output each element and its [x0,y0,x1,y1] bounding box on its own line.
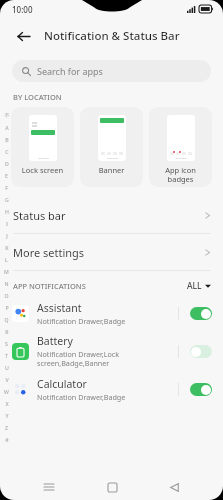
staticText: Notification Drawer,Lock screen,Badge,Ba… [37,349,120,368]
button[interactable]: On [190,383,212,396]
staticText: More settings [13,245,85,260]
button[interactable]: ALL [187,280,211,292]
staticText: L [5,256,8,268]
staticText: G [5,196,9,208]
button[interactable]: Back [12,25,34,47]
staticText: Banner [80,165,143,175]
staticText: App icon badges [149,165,212,184]
staticText: T [5,352,8,364]
staticText: Y [5,412,9,424]
staticText: I [6,220,8,232]
button[interactable]: Search for apps [12,60,211,82]
staticText: B [5,136,9,148]
button[interactable]: Lock screen [11,107,74,187]
staticText: Q [4,316,9,328]
staticText: 不 [4,112,10,124]
button[interactable]: App icon badges [149,107,212,187]
staticText: C [5,148,9,160]
staticText: X [5,400,9,412]
staticText: # [5,436,9,448]
staticText: E [5,172,8,184]
staticText: Calculator [37,377,87,391]
staticText: Notification Drawer,Badge [37,392,126,402]
staticText: M [4,268,9,280]
staticText: Search for apps [37,65,103,77]
staticText: Notification Drawer,Badge [37,316,126,326]
button[interactable]: Back [161,474,187,500]
staticText: Assistant [37,301,82,315]
button[interactable]: Off [190,345,212,358]
button[interactable]: Recents [36,474,62,500]
staticText: A [5,124,9,136]
staticText: APP NOTIFICATIONS [13,281,86,291]
staticText: S [5,340,8,352]
staticText: BY LOCATION [13,92,62,102]
staticText: K [5,244,9,256]
staticText: F [5,184,8,196]
staticText: Status bar [13,208,66,223]
staticText: Battery [37,334,73,348]
staticText: N [4,280,9,292]
staticText: U [5,364,9,376]
button[interactable]: Status bar [0,197,223,233]
staticText: H [5,208,9,220]
button[interactable]: Home [99,474,125,500]
staticText: Lock screen [11,165,74,175]
staticText: J [6,232,8,244]
staticText: Z [5,424,8,436]
button[interactable]: On [190,307,212,320]
staticText: R [5,328,9,340]
staticText: P [5,304,9,316]
button[interactable]: More settings [0,234,223,270]
staticText: V [5,376,9,388]
button[interactable]: Assistant [0,296,223,330]
staticText: 10:00 [12,4,33,15]
staticText: W [4,388,9,400]
staticText: ALL [187,280,202,292]
staticText: O [4,292,9,304]
button[interactable]: Calculator [0,372,223,406]
button[interactable]: Banner [80,107,143,187]
button[interactable]: Battery [0,330,223,372]
staticText: D [5,160,9,172]
staticText: Notification & Status Bar [44,28,180,44]
